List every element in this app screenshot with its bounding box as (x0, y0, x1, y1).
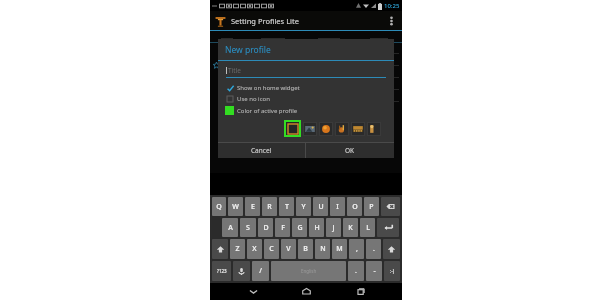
button[interactable]: Enter (377, 218, 399, 237)
staticText: K (348, 223, 353, 233)
button[interactable]: Voice input (233, 261, 250, 281)
staticText: M (336, 244, 343, 254)
button[interactable]: ?123 (212, 261, 231, 281)
staticText: :-) (390, 268, 395, 274)
button[interactable]: Shift (212, 239, 228, 259)
staticText: . (355, 266, 357, 276)
button[interactable]: B (298, 239, 313, 259)
button[interactable]: Home (295, 283, 317, 300)
button[interactable]: U (313, 197, 328, 216)
staticText: J (332, 223, 335, 233)
staticText: U (318, 202, 324, 212)
staticText: English (301, 268, 317, 274)
button[interactable]: A (222, 218, 238, 237)
staticText: Show on home widget (237, 84, 300, 92)
button[interactable]: E (245, 197, 260, 216)
button[interactable]: J (326, 218, 341, 237)
staticText: Setting Profiles Lite (231, 16, 299, 26)
button[interactable]: , (349, 239, 364, 259)
staticText: , (356, 244, 358, 254)
button[interactable]: O (347, 197, 362, 216)
button[interactable]: Profile icon option 5 (368, 123, 380, 135)
button[interactable]: T (279, 197, 294, 216)
button[interactable]: X (247, 239, 262, 259)
staticText: Z (235, 244, 240, 254)
staticText: O (352, 202, 358, 212)
button[interactable]: Profile icon option 2 (320, 123, 332, 135)
staticText: . (373, 244, 375, 254)
button[interactable]: R (262, 197, 277, 216)
button[interactable]: N (315, 239, 330, 259)
staticText: OK (345, 146, 355, 155)
button[interactable]: Show on home widget (218, 82, 394, 93)
staticText: Color of active profile (237, 107, 298, 115)
button[interactable]: OK (306, 143, 394, 158)
staticText: E (251, 202, 255, 212)
button[interactable]: :-) (384, 261, 400, 281)
staticText: Cancel (251, 146, 272, 155)
button[interactable]: L (360, 218, 375, 237)
button[interactable]: F (275, 218, 290, 237)
button[interactable]: Profile icon option 3 (336, 123, 348, 135)
staticText: / (259, 266, 262, 276)
button[interactable]: Y (296, 197, 311, 216)
button[interactable]: W (228, 197, 243, 216)
button[interactable]: Cancel (218, 143, 305, 158)
button[interactable]: . (366, 239, 381, 259)
button[interactable]: More options (384, 14, 398, 28)
staticText: C (269, 244, 274, 254)
staticText: A (228, 223, 233, 233)
button[interactable]: G (292, 218, 307, 237)
staticText: ?123 (217, 268, 227, 274)
staticText: T (285, 202, 289, 212)
button[interactable]: Shift (383, 239, 400, 259)
staticText: N (320, 244, 326, 254)
button[interactable]: Z (230, 239, 245, 259)
staticText: 10:25 (384, 2, 400, 10)
button[interactable]: Profile icon option 1 (304, 123, 316, 135)
button[interactable]: C (264, 239, 279, 259)
staticText: G (297, 223, 303, 233)
button[interactable]: S (240, 218, 256, 237)
button[interactable]: Back (242, 283, 264, 300)
button[interactable]: Profile icon option 4 (352, 123, 364, 135)
staticText: P (369, 202, 374, 212)
staticText: Y (301, 202, 306, 212)
staticText: Q (216, 202, 222, 212)
button[interactable]: I (330, 197, 345, 216)
staticText: Title (228, 66, 241, 75)
staticText: S (246, 223, 250, 233)
button[interactable]: D (258, 218, 273, 237)
button[interactable]: V (281, 239, 296, 259)
button[interactable]: P (364, 197, 379, 216)
staticText: L (366, 223, 370, 233)
button[interactable]: - (366, 261, 382, 281)
staticText: R (267, 202, 272, 212)
staticText: I (336, 202, 339, 212)
staticText: V (286, 244, 291, 254)
button[interactable]: K (343, 218, 358, 237)
button[interactable]: Use no icon (218, 93, 394, 104)
staticText: B (303, 244, 308, 254)
button[interactable]: Color of active profile (218, 104, 394, 117)
staticText: H (314, 223, 320, 233)
staticText: X (252, 244, 257, 254)
staticText: - (373, 266, 376, 276)
button[interactable]: / (252, 261, 269, 281)
button[interactable]: Delete (381, 197, 400, 216)
staticText: F (281, 223, 285, 233)
staticText: New profile (225, 44, 271, 56)
button[interactable]: Default icon, selected (286, 122, 299, 135)
button[interactable]: . (348, 261, 364, 281)
button[interactable]: Q (212, 197, 226, 216)
staticText: W (232, 202, 239, 212)
button[interactable]: H (309, 218, 324, 237)
staticText: Use no icon (237, 95, 270, 103)
staticText: D (263, 223, 269, 233)
button[interactable]: Recent apps (349, 283, 371, 300)
button[interactable]: M (332, 239, 347, 259)
